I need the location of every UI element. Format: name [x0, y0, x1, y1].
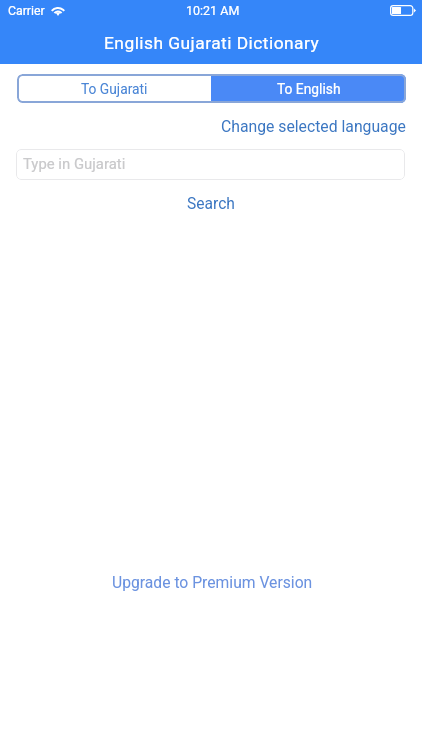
staticText: To English [277, 81, 341, 97]
staticText: 10:21 AM [186, 3, 240, 18]
staticText: Change selected language [221, 117, 406, 135]
button[interactable]: To Gujarati [17, 74, 211, 103]
button[interactable]: Type in Gujarati [16, 149, 405, 180]
button[interactable]: Upgrade to Premium Version [98, 569, 327, 595]
staticText: Upgrade to Premium Version [112, 573, 313, 591]
button[interactable]: Search [173, 191, 249, 217]
staticText: Type in Gujarati [23, 155, 126, 172]
button[interactable]: To English [211, 74, 406, 103]
button[interactable]: Change selected language [207, 113, 420, 139]
staticText: Carrier [8, 4, 45, 18]
staticText: To Gujarati [81, 81, 148, 97]
staticText: English Gujarati Dictionary [104, 33, 320, 53]
staticText: Search [187, 195, 235, 213]
other: Wi-Fi [50, 5, 66, 16]
other: Battery [390, 5, 416, 16]
